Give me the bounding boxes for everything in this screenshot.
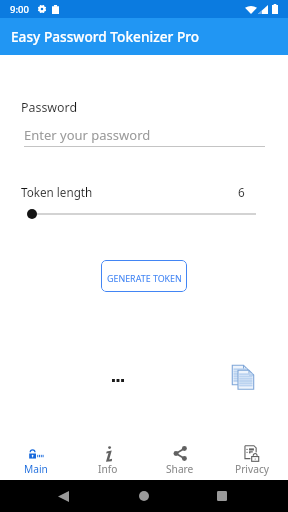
button[interactable]: Privacy	[216, 435, 288, 480]
staticText: Easy Password Tokenizer Pro	[11, 27, 200, 46]
button[interactable]: Info	[72, 435, 144, 480]
button[interactable]: GENERATE TOKEN	[101, 260, 187, 292]
staticText: GENERATE TOKEN	[107, 272, 182, 284]
staticText: 9:00	[10, 3, 29, 16]
button[interactable]: Recents	[211, 485, 233, 507]
staticText: Share	[166, 462, 194, 476]
staticText: Info	[98, 462, 118, 476]
staticText: Password	[21, 99, 78, 116]
staticText: 6	[238, 184, 245, 200]
button[interactable]: Back	[52, 485, 74, 507]
staticText: Token length	[21, 184, 93, 200]
button[interactable]: Main	[0, 435, 72, 480]
staticText: Main	[24, 462, 48, 476]
button[interactable]: Copy token	[230, 362, 258, 391]
button[interactable]: Home	[133, 485, 155, 507]
staticText: Privacy	[235, 462, 269, 476]
staticText: Enter your password	[24, 126, 151, 144]
button[interactable]: Share	[144, 435, 216, 480]
